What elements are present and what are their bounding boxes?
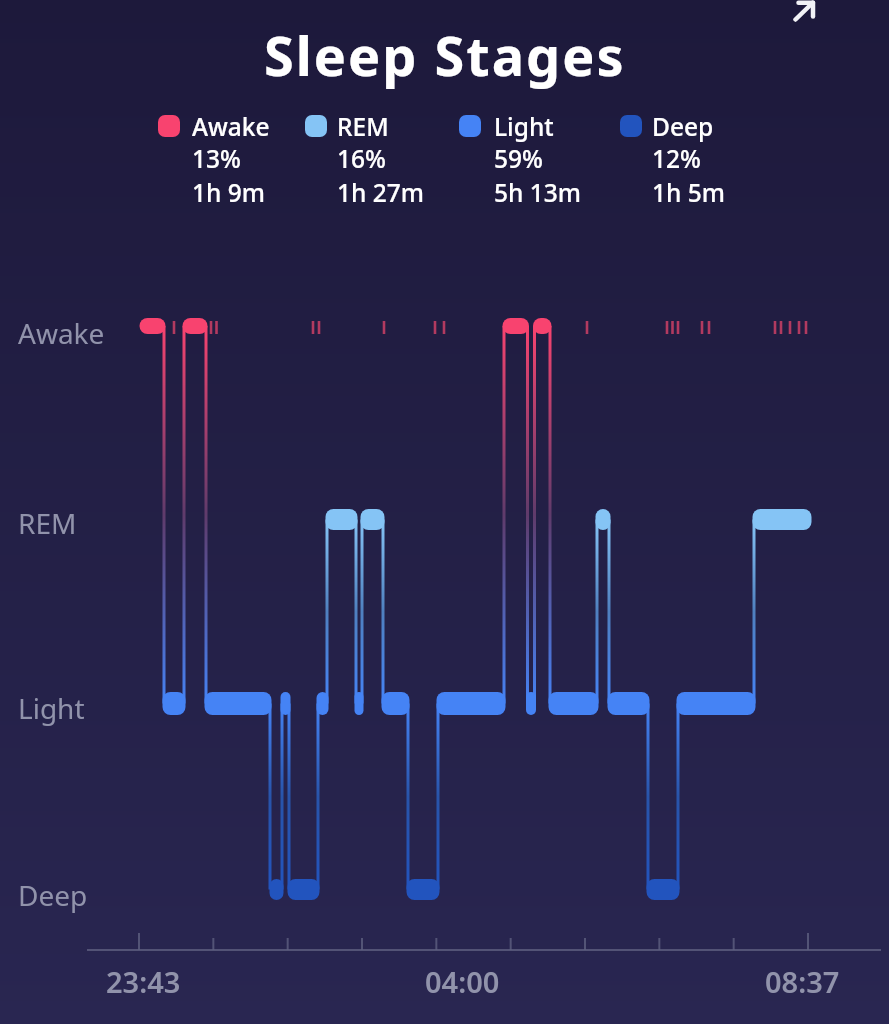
staticText: 1h 9m: [192, 176, 265, 209]
staticText: 16%: [337, 142, 386, 175]
staticText: Awake: [18, 314, 105, 352]
staticText: 59%: [494, 142, 543, 175]
staticText: 5h 13m: [494, 176, 581, 209]
staticText: Deep: [652, 110, 714, 143]
staticText: 13%: [192, 142, 241, 175]
staticText: 12%: [652, 142, 701, 175]
staticText: Deep: [18, 876, 88, 914]
staticText: 1h 5m: [652, 176, 725, 209]
staticText: 1h 27m: [337, 176, 424, 209]
staticText: 23:43: [106, 962, 181, 1001]
staticText: REM: [337, 110, 389, 143]
staticText: REM: [18, 504, 77, 542]
staticText: Light: [494, 110, 554, 143]
staticText: Sleep Stages: [264, 18, 626, 92]
staticText: 08:37: [765, 962, 840, 1001]
staticText: Light: [18, 689, 85, 727]
staticText: Awake: [192, 110, 270, 143]
staticText: 04:00: [425, 962, 500, 1001]
